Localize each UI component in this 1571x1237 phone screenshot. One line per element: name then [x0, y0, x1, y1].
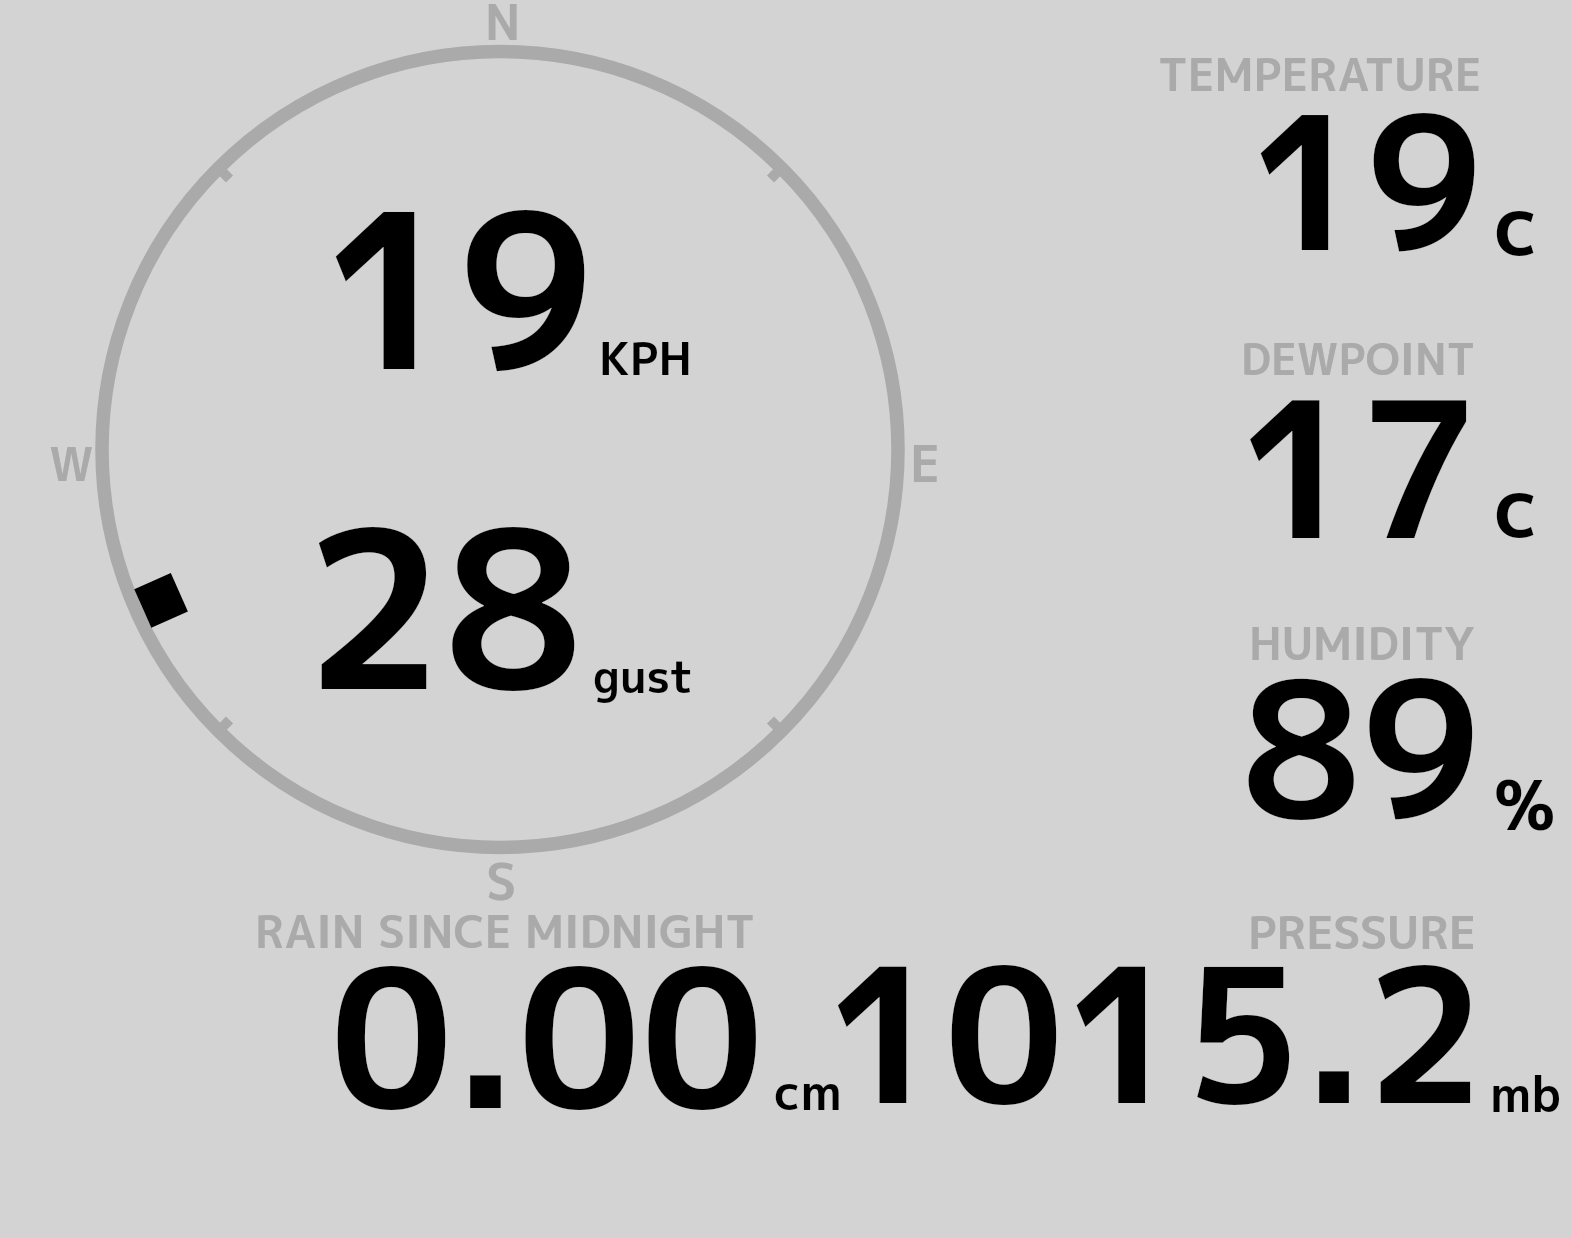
button[interactable]: Rain since midnight 0.00 cm	[240, 900, 860, 1130]
staticText: W	[49, 432, 94, 496]
other: Wind direction compass	[0, 0, 1571, 1237]
button[interactable]: Wind 19 KPH, gusting 28, direction west …	[20, 10, 960, 890]
staticText: DEWPOINT	[1241, 329, 1476, 389]
staticText: 19	[321, 139, 595, 438]
staticText: N	[485, 0, 521, 55]
staticText: 1015.2	[825, 903, 1485, 1163]
staticText: gust	[593, 645, 694, 708]
staticText: 0.00	[330, 902, 764, 1170]
staticText: RAIN SINCE MIDNIGHT	[255, 900, 756, 962]
staticText: 89	[1241, 616, 1482, 878]
staticText: 28	[304, 455, 584, 759]
button[interactable]: Dew point 17 degrees Celsius	[1140, 320, 1560, 570]
staticText: c	[1494, 449, 1539, 563]
staticText: 17	[1237, 335, 1479, 599]
staticText: TEMPERATURE	[1158, 43, 1482, 105]
staticText: mb	[1490, 1059, 1562, 1127]
button[interactable]: Temperature 19 degrees Celsius	[1140, 30, 1560, 290]
staticText: 19	[1248, 52, 1484, 309]
staticText: HUMIDITY	[1249, 612, 1476, 674]
staticText: KPH	[599, 326, 692, 389]
staticText: S	[486, 846, 517, 916]
button[interactable]: Humidity 89 percent	[1140, 600, 1560, 850]
staticText: c	[1494, 167, 1539, 281]
staticText: E	[910, 428, 941, 498]
staticText: cm	[774, 1057, 842, 1125]
staticText: %	[1494, 757, 1556, 852]
staticText: PRESSURE	[1248, 900, 1477, 963]
button[interactable]: Pressure 1015.2 mb	[870, 900, 1560, 1130]
